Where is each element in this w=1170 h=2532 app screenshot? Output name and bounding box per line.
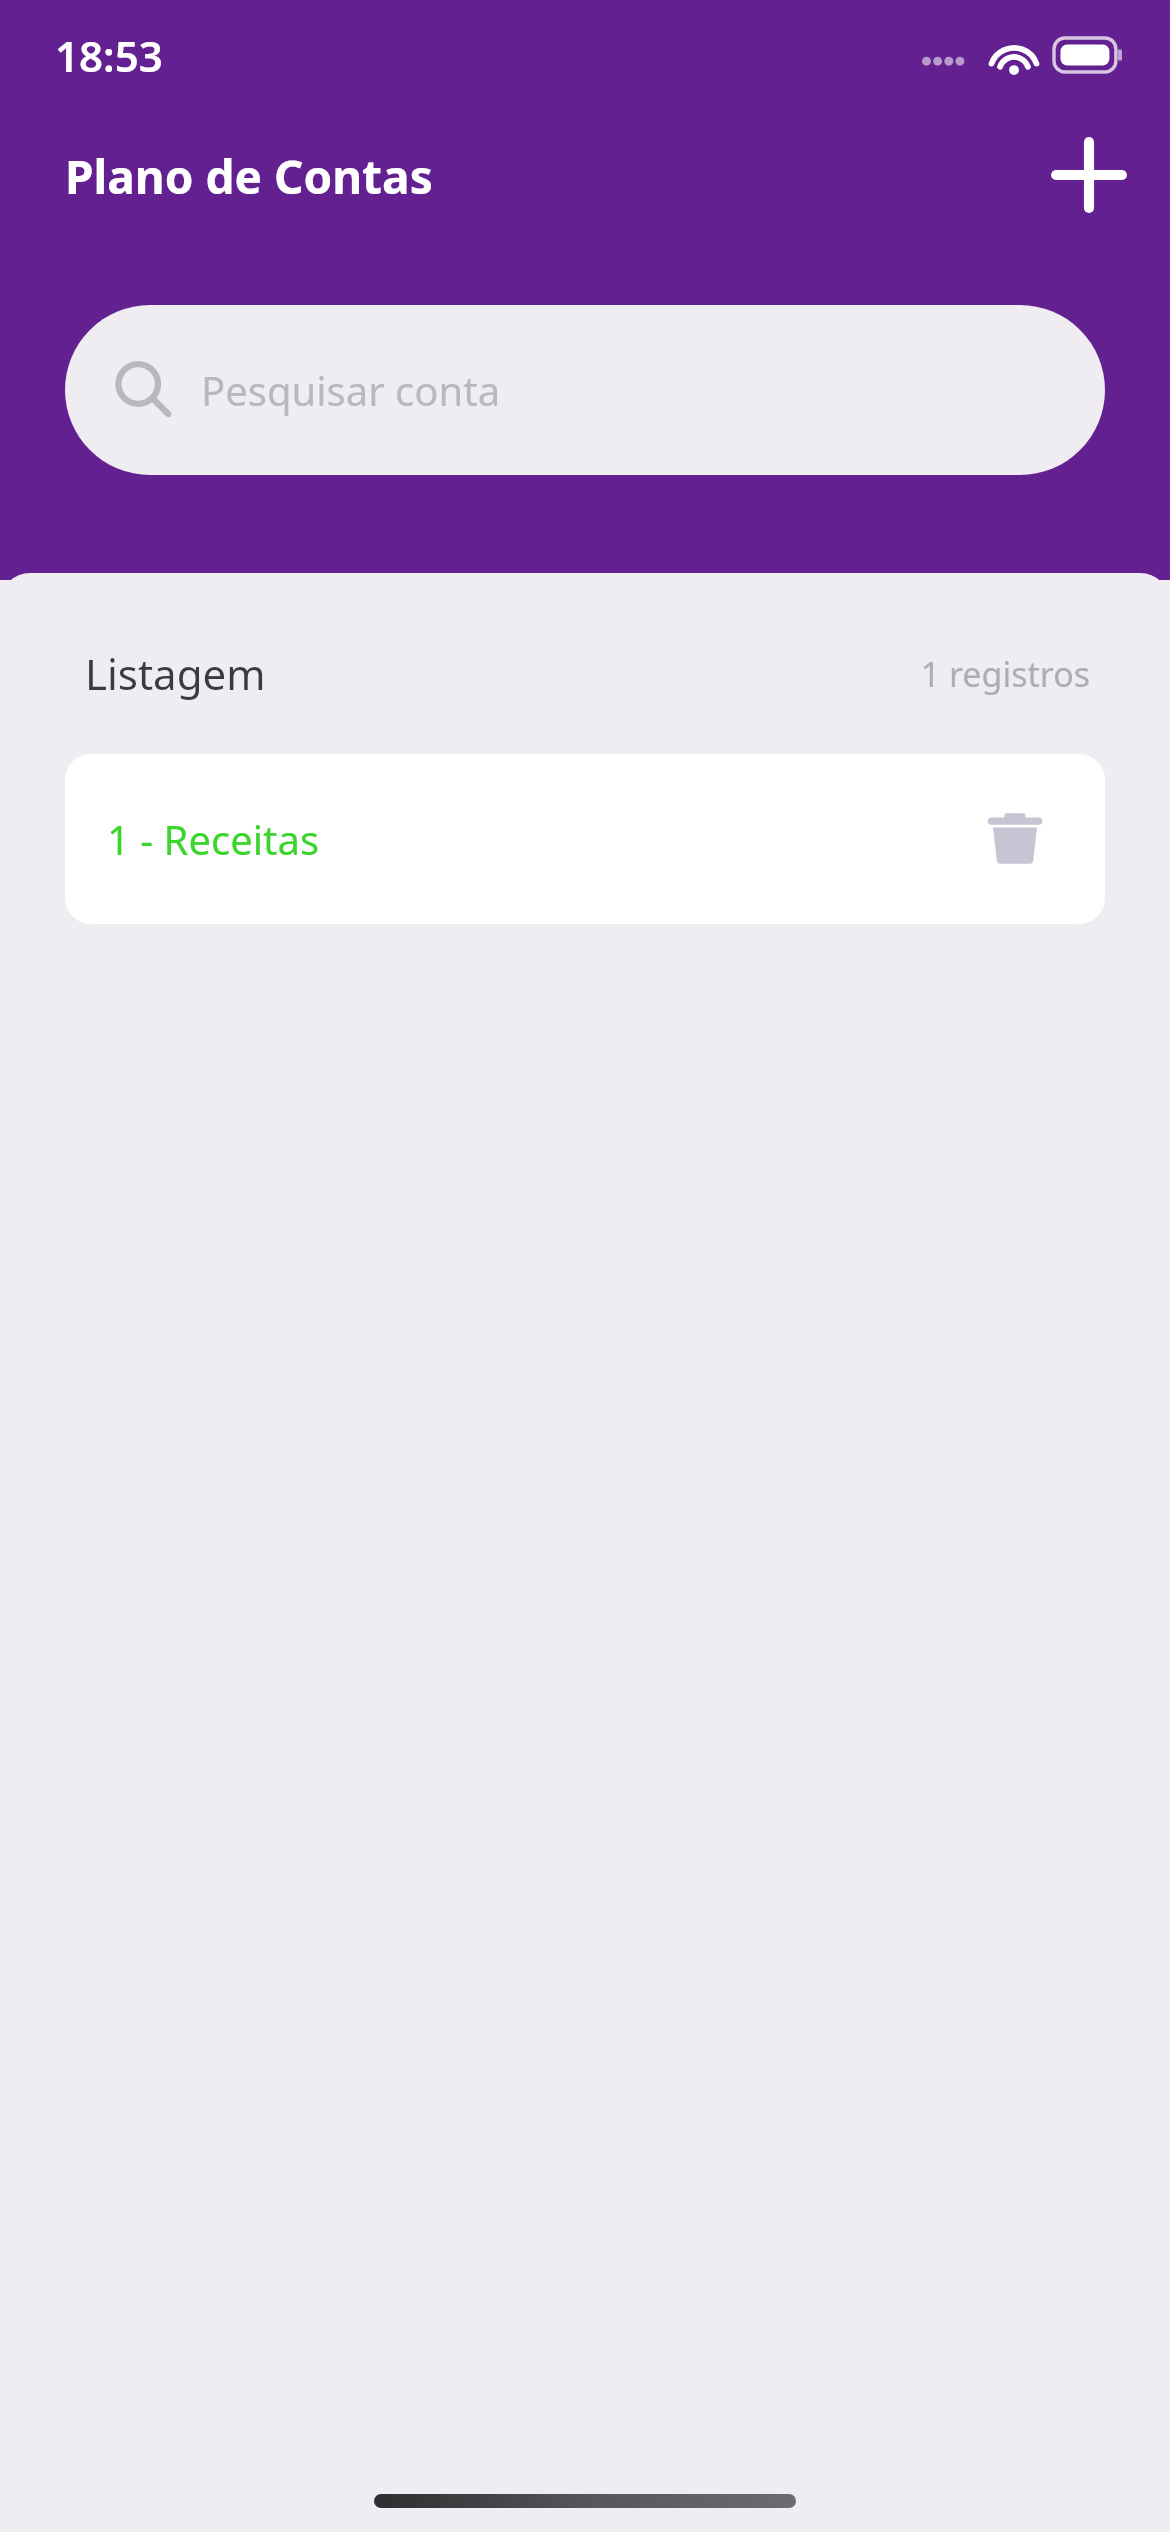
staticText: 1 - Receitas — [107, 812, 320, 866]
staticText: Listagem — [85, 645, 266, 702]
button[interactable]: Excluir conta — [967, 791, 1063, 887]
button[interactable]: Adicionar conta — [1034, 120, 1144, 230]
staticText: Plano de Contas — [65, 145, 433, 208]
button[interactable]: 1 - Receitas — [65, 754, 1105, 924]
button[interactable]: Pesquisar conta — [65, 305, 1105, 475]
staticText: 18:53 — [55, 27, 163, 84]
staticText: 1 registros — [920, 651, 1090, 697]
staticText: Pesquisar conta — [201, 363, 501, 417]
